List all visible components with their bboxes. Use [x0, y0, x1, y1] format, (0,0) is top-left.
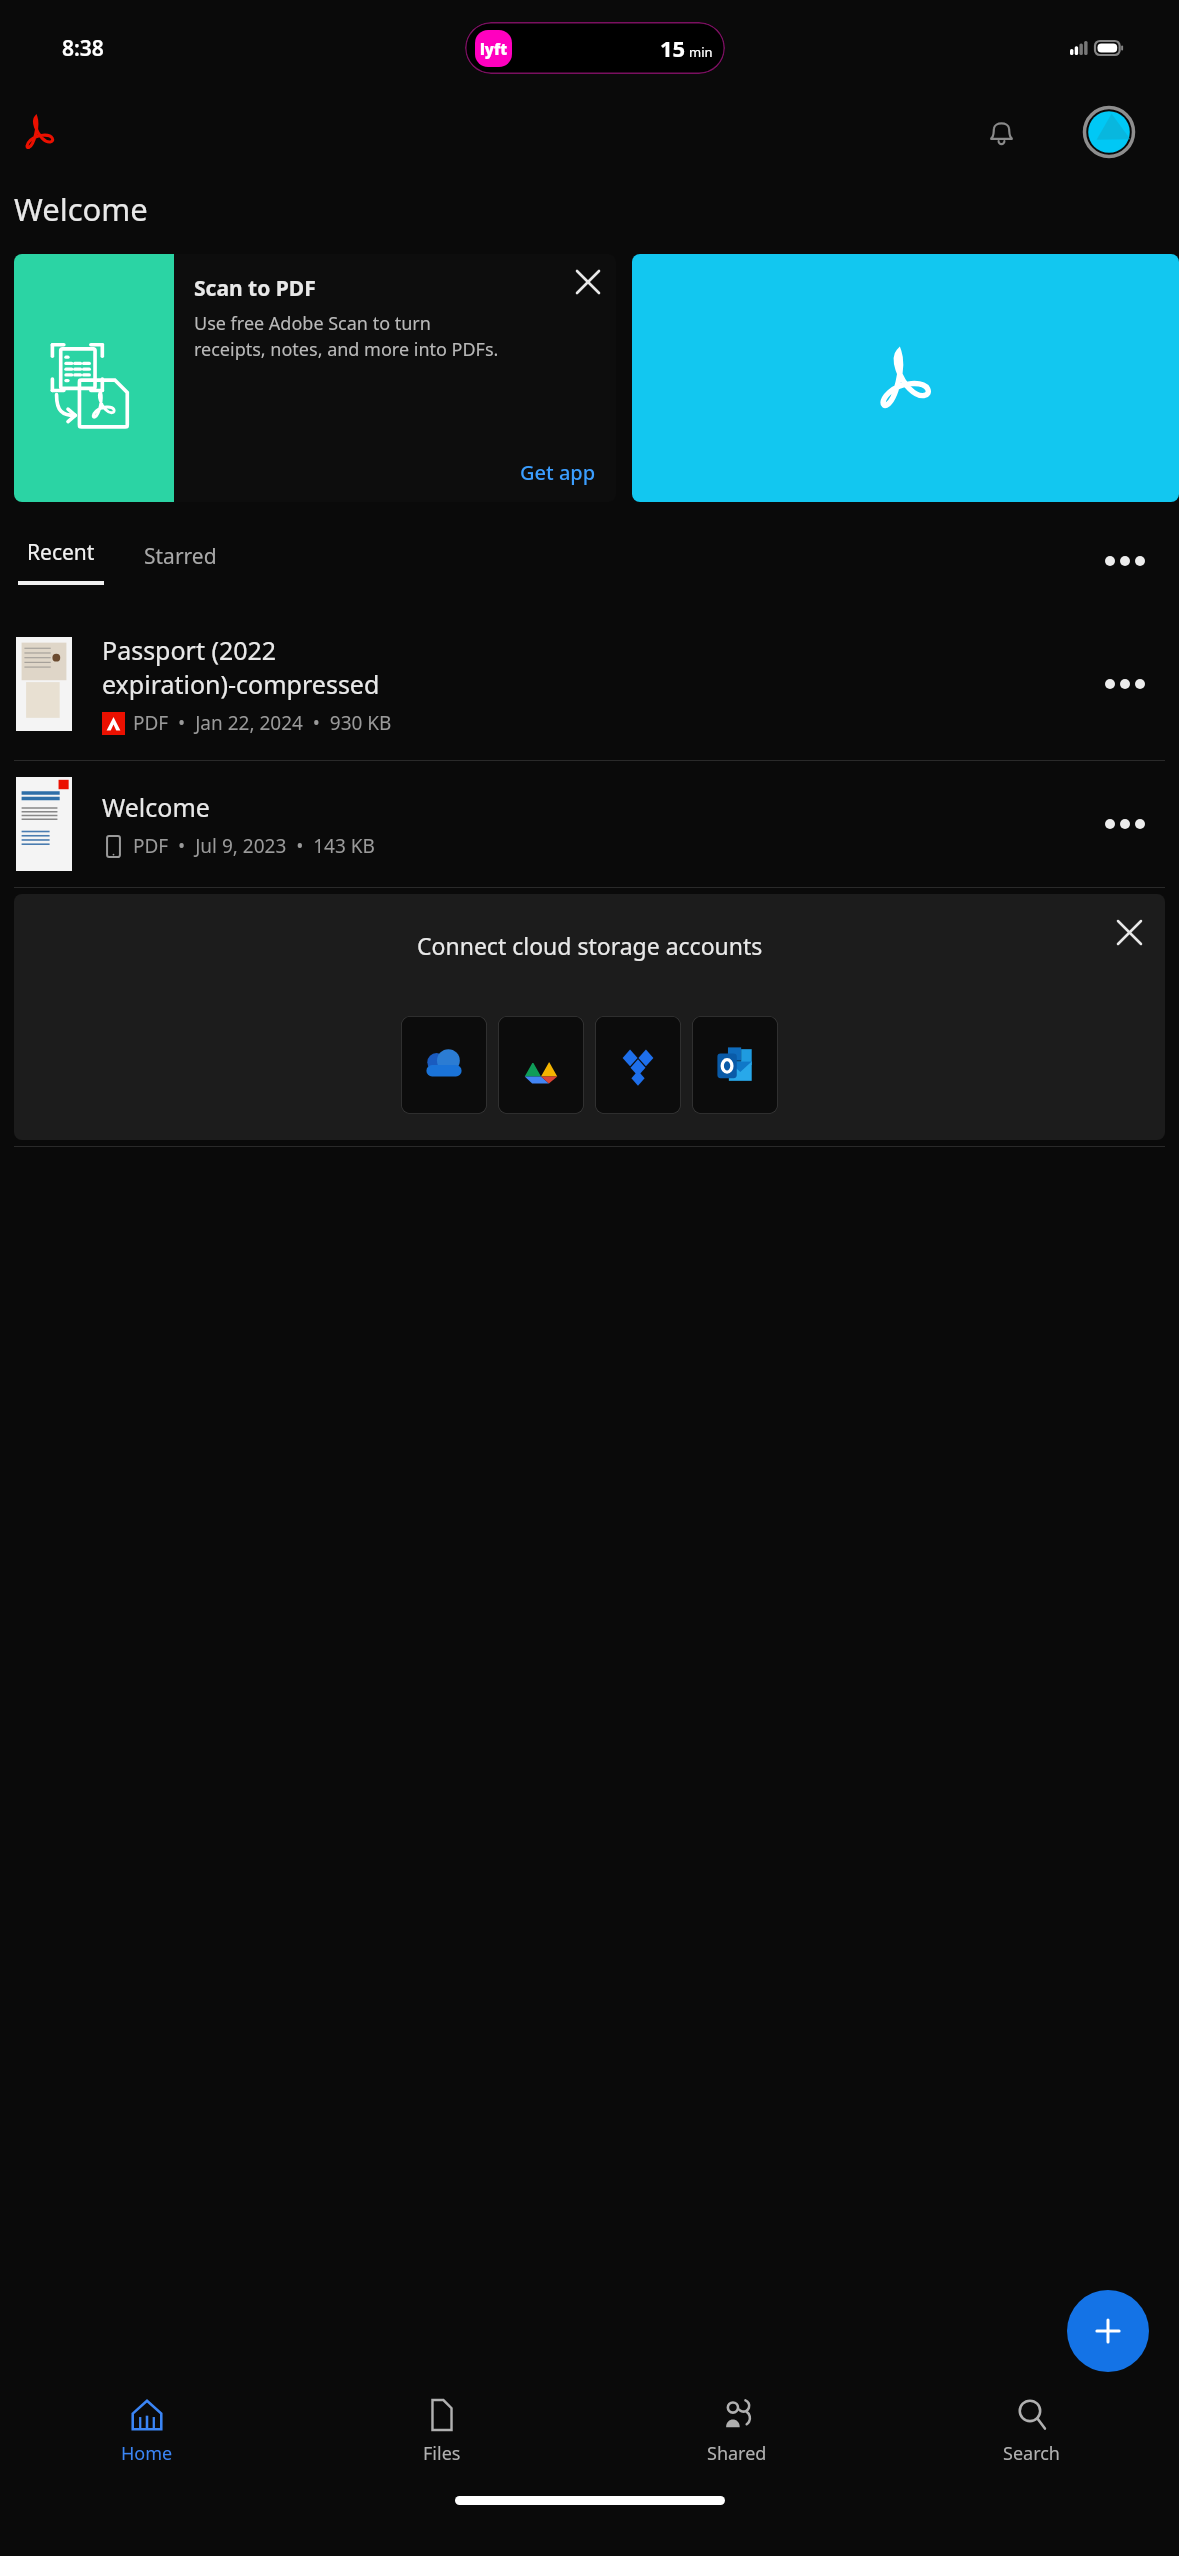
- button[interactable]: Dismiss: [564, 258, 612, 306]
- staticText: Recent: [27, 538, 95, 567]
- button[interactable]: Home: [0, 2368, 294, 2496]
- button[interactable]: [632, 254, 1179, 502]
- staticText: min: [689, 43, 713, 61]
- staticText: PDF • Jul 9, 2023 • 143 KB: [133, 833, 375, 859]
- staticText: Search: [1003, 2441, 1060, 2466]
- button[interactable]: Adobe Acrobat: [14, 106, 66, 158]
- button[interactable]: Starred: [140, 538, 221, 575]
- staticText: Scan to PDF: [194, 274, 316, 303]
- button[interactable]: Search: [884, 2368, 1179, 2496]
- button[interactable]: Scan to PDF: [14, 254, 616, 502]
- button[interactable]: Files: [294, 2368, 589, 2496]
- button[interactable]: Welcome: [0, 761, 1179, 887]
- button[interactable]: Get app: [514, 453, 602, 492]
- button[interactable]: Google Drive: [498, 1016, 584, 1114]
- button[interactable]: Passport (2022 expiration)-compressed: [0, 608, 1179, 760]
- staticText: Shared: [707, 2441, 767, 2466]
- button[interactable]: Shared: [589, 2368, 884, 2496]
- button[interactable]: Create: [1067, 2290, 1149, 2372]
- staticText: Get app: [520, 459, 596, 486]
- staticText: Files: [423, 2441, 461, 2466]
- staticText: Welcome: [14, 188, 148, 230]
- staticText: PDF • Jan 22, 2024 • 930 KB: [133, 710, 392, 736]
- button[interactable]: More options: [1097, 533, 1153, 589]
- staticText: Passport (2022 expiration)-compressed: [102, 633, 380, 701]
- staticText: 15: [660, 33, 686, 63]
- staticText: Welcome: [102, 790, 210, 824]
- button[interactable]: Dismiss cloud storage: [1103, 906, 1155, 958]
- staticText: Starred: [144, 542, 217, 571]
- button[interactable]: Notifications: [975, 106, 1027, 158]
- button[interactable]: Outlook: [692, 1016, 778, 1114]
- staticText: 8:38: [62, 34, 104, 63]
- button[interactable]: File options: [1097, 796, 1153, 852]
- staticText: lyft: [480, 39, 508, 59]
- staticText: Connect cloud storage accounts: [417, 930, 763, 961]
- button[interactable]: lyft: [465, 22, 725, 74]
- button[interactable]: Dropbox: [595, 1016, 681, 1114]
- staticText: Use free Adobe Scan to turn receipts, no…: [194, 311, 499, 362]
- button[interactable]: Recent: [14, 538, 108, 585]
- button[interactable]: File options: [1097, 656, 1153, 712]
- button[interactable]: OneDrive: [401, 1016, 487, 1114]
- button[interactable]: Profile: [1081, 104, 1137, 160]
- staticText: Home: [121, 2441, 173, 2466]
